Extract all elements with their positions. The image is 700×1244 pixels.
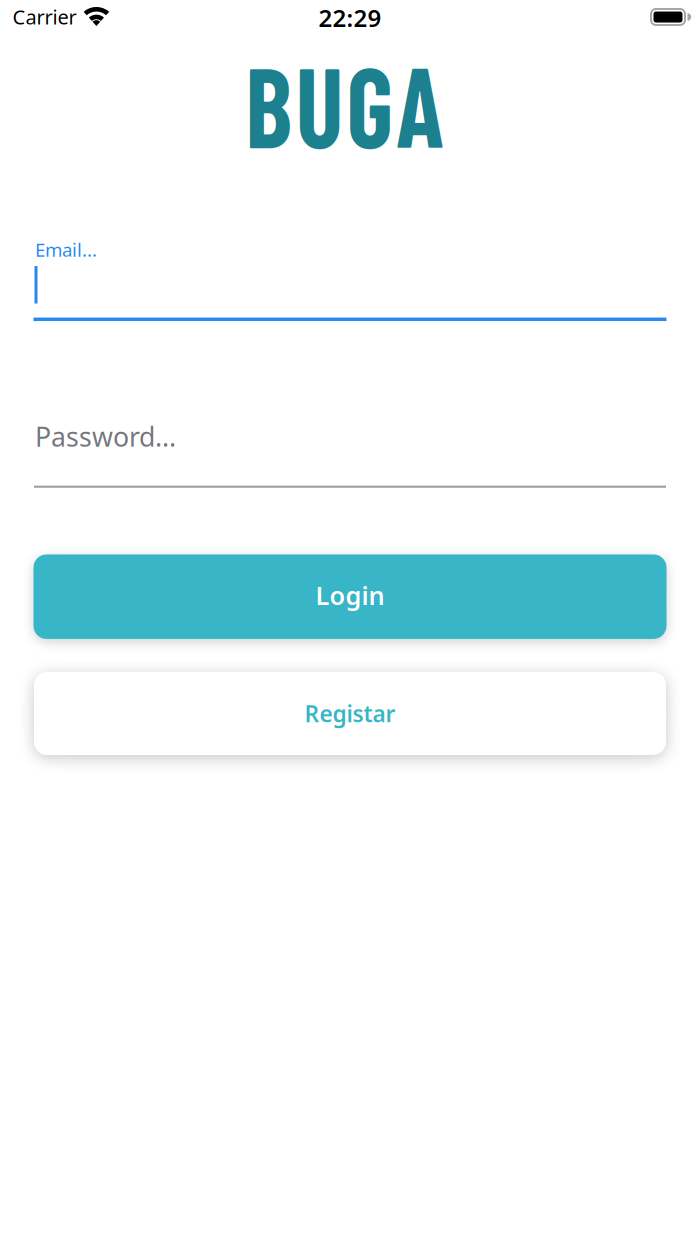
staticText: Carrier (12, 3, 76, 30)
staticText: Login (315, 578, 384, 612)
staticText: Registar (304, 698, 395, 728)
button[interactable]: Registar (34, 672, 666, 755)
staticText: BUGA (232, 35, 457, 171)
button[interactable]: Login (33, 554, 666, 639)
staticText: 22:29 (318, 2, 381, 34)
staticText: Email... (35, 237, 97, 262)
staticText: Password... (35, 419, 176, 454)
